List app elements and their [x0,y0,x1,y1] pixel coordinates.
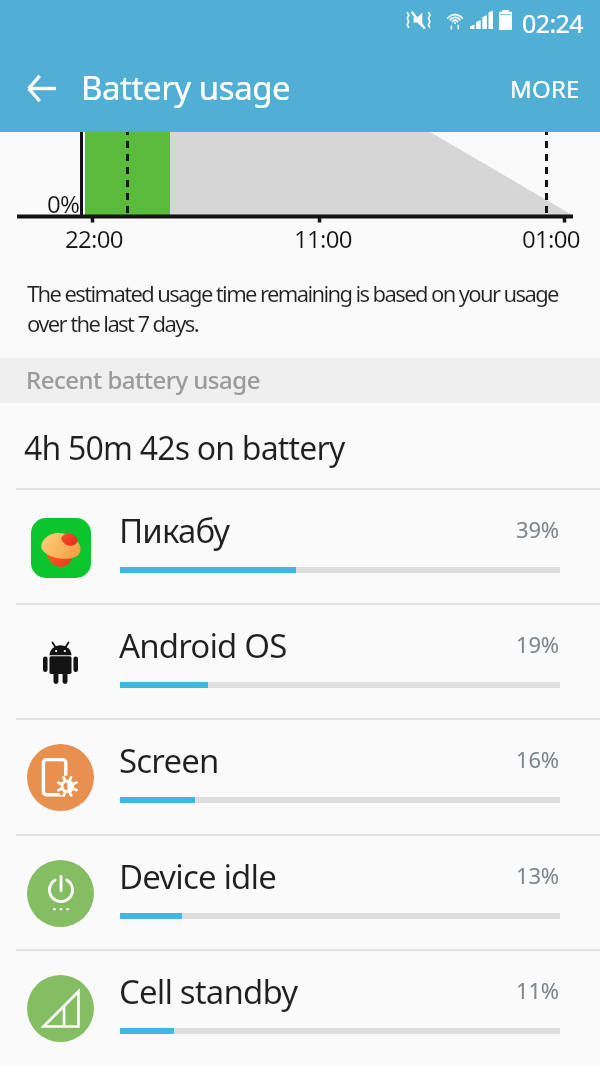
staticText: over the last 7 days. [27,308,198,338]
staticText: 0% [47,187,80,220]
staticText: 19% [516,629,559,659]
button[interactable]: Cell standby [0,948,600,1063]
staticText: 39% [516,514,559,544]
staticText: Cell standby [119,969,298,1014]
staticText: 11% [516,975,559,1005]
button[interactable]: MORE [490,56,600,121]
staticText: Recent battery usage [26,363,260,396]
staticText: 11:00 [294,222,352,255]
staticText: Screen [119,738,219,783]
staticText: The estimated usage time remaining is ba… [27,278,558,308]
button[interactable]: Пикабу [0,487,600,602]
staticText: Android OS [119,623,287,668]
button[interactable]: Device idle [0,833,600,948]
staticText: 02:24 [522,6,583,40]
staticText: Battery usage [81,65,291,110]
button[interactable]: Screen [0,717,600,832]
staticText: 4h 50m 42s on battery [24,426,345,470]
staticText: Device idle [119,854,276,899]
staticText: 16% [516,744,559,774]
staticText: 13% [516,860,559,890]
staticText: MORE [510,72,580,105]
staticText: 22:00 [65,222,123,255]
staticText: 01:00 [522,222,580,255]
button[interactable]: Android OS [0,602,600,717]
staticText: Пикабу [119,508,230,553]
button[interactable]: Navigate up [12,59,70,117]
